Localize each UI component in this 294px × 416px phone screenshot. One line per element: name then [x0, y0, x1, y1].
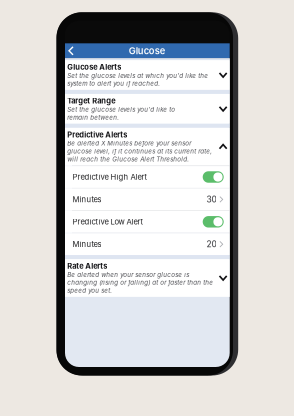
button[interactable]: Rate Alerts — [65, 259, 230, 297]
staticText: Be alerted when your sensor glucose is — [67, 271, 189, 278]
button[interactable]: Predictive High Alert — [65, 166, 230, 188]
button[interactable]: Minutes — [65, 233, 230, 255]
staticText: speed you set. — [67, 287, 112, 294]
button[interactable]: Target Range — [65, 94, 230, 124]
staticText: Predictive Alerts — [67, 130, 127, 139]
staticText: Set the glucose levels you'd like to — [67, 106, 175, 113]
button[interactable]: Minutes — [65, 188, 230, 210]
staticText: Glucose Alerts — [67, 62, 121, 71]
staticText: 20 — [206, 239, 216, 249]
staticText: Glucose — [129, 45, 166, 56]
staticText: Minutes — [72, 240, 101, 249]
button[interactable]: Predictive Alerts — [65, 128, 230, 165]
staticText: Rate Alerts — [67, 261, 107, 270]
staticText: Be alerted X Minutes before your sensor — [67, 140, 191, 147]
staticText: 30 — [206, 194, 216, 204]
staticText: glucose level, if it continues at its cu… — [67, 147, 212, 155]
staticText: Set the glucose levels at which you'd li… — [67, 72, 208, 79]
staticText: will reach the Glucose Alert Threshold. — [67, 155, 189, 163]
staticText: Target Range — [67, 96, 115, 105]
staticText: Minutes — [72, 195, 101, 204]
button[interactable]: Glucose Alerts — [65, 60, 230, 90]
staticText: remain between. — [67, 114, 119, 121]
button[interactable]: Predictive Low Alert — [65, 211, 230, 233]
staticText: Predictive Low Alert — [72, 217, 143, 226]
staticText: Predictive High Alert — [72, 172, 147, 182]
staticText: changing (rising or falling) at or faste… — [67, 279, 213, 286]
staticText: system to alert you if reached. — [67, 80, 160, 87]
button[interactable]: Back — [65, 43, 80, 58]
